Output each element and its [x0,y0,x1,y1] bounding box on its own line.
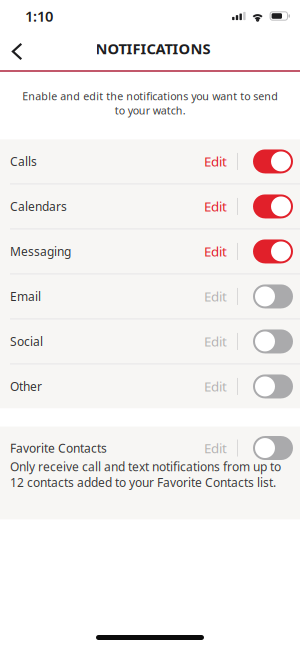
button[interactable]: Calls [0,139,300,183]
staticText: 1:10 [25,6,53,26]
staticText: Edit [204,333,227,350]
button[interactable]: Favorite Contacts [0,426,300,469]
staticText: Favorite Contacts [10,440,107,456]
staticText: Other [10,378,42,394]
staticText: NOTIFICATIONS [95,39,210,58]
staticText: Edit [204,439,227,457]
button[interactable]: Email [0,274,300,318]
button[interactable]: Calendars [0,184,300,228]
staticText: Edit [204,378,227,395]
staticText: Social [10,333,43,349]
staticText: Calendars [10,198,67,214]
staticText: Email [10,288,41,304]
staticText: Messaging [10,243,71,259]
button[interactable]: Social [0,319,300,363]
staticText: Enable and edit the notifications you wa… [22,89,278,117]
staticText: Only receive call and text notifications… [10,458,281,490]
staticText: Edit [204,243,227,260]
button[interactable]: Other [0,364,300,408]
staticText: Edit [204,288,227,305]
staticText: Edit [204,198,227,215]
button[interactable]: Back [1,33,33,69]
button[interactable]: Messaging [0,229,300,273]
staticText: Edit [204,153,227,170]
staticText: Calls [10,153,37,169]
